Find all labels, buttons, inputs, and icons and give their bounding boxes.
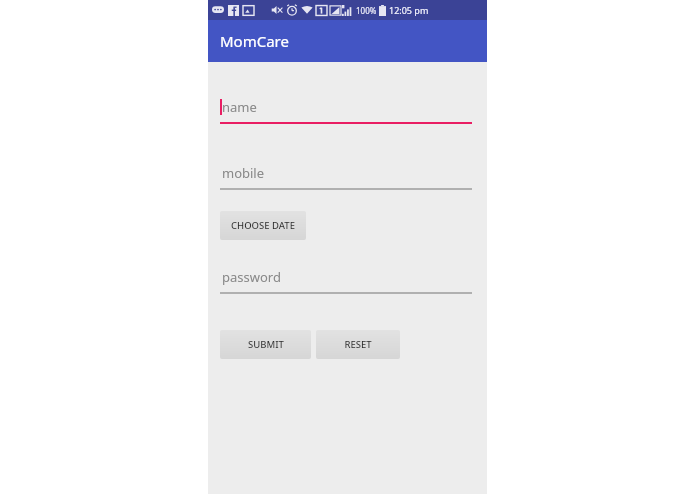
staticText: MomCare — [220, 31, 289, 51]
staticText: password — [222, 268, 281, 286]
button[interactable]: password — [220, 268, 472, 294]
staticText: mobile — [222, 164, 265, 182]
staticText: 100% — [356, 5, 377, 16]
button[interactable]: name — [220, 98, 472, 124]
staticText: name — [222, 98, 257, 116]
button[interactable]: mobile — [220, 164, 472, 190]
button[interactable]: SUBMIT — [220, 330, 311, 359]
staticText: 12:05 pm — [389, 4, 429, 16]
button[interactable]: CHOOSE DATE — [220, 211, 306, 240]
staticText: CHOOSE DATE — [231, 219, 295, 232]
button[interactable]: RESET — [316, 330, 400, 359]
staticText: SUBMIT — [248, 338, 284, 351]
staticText: RESET — [344, 338, 372, 351]
